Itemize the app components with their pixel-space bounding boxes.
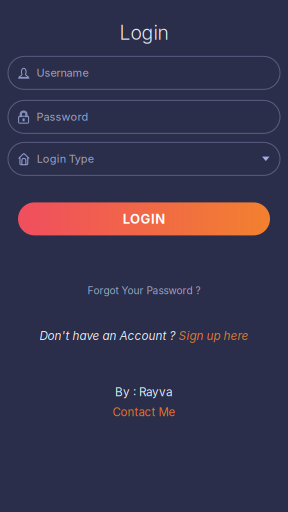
staticText: Login <box>119 21 168 44</box>
button[interactable]: Contact Me <box>112 405 175 419</box>
staticText: LOGIN <box>123 211 165 227</box>
button[interactable]: LOGIN <box>18 202 270 235</box>
staticText: Login Type <box>37 152 94 165</box>
staticText: Contact Me <box>112 405 175 419</box>
staticText: By : Rayva <box>115 385 173 399</box>
button[interactable]: Login Type <box>8 142 280 175</box>
button[interactable]: Password <box>8 100 280 133</box>
button[interactable]: Forgot Your Password ? <box>87 284 200 297</box>
staticText: Forgot Your Password ? <box>87 284 200 297</box>
staticText: Don't have an Account ? <box>39 329 175 343</box>
staticText: Sign up here <box>178 329 248 343</box>
staticText: Username <box>36 66 88 79</box>
staticText: Password <box>36 110 88 123</box>
button[interactable]: Username <box>8 56 280 89</box>
button[interactable]: Sign up here <box>178 329 248 343</box>
